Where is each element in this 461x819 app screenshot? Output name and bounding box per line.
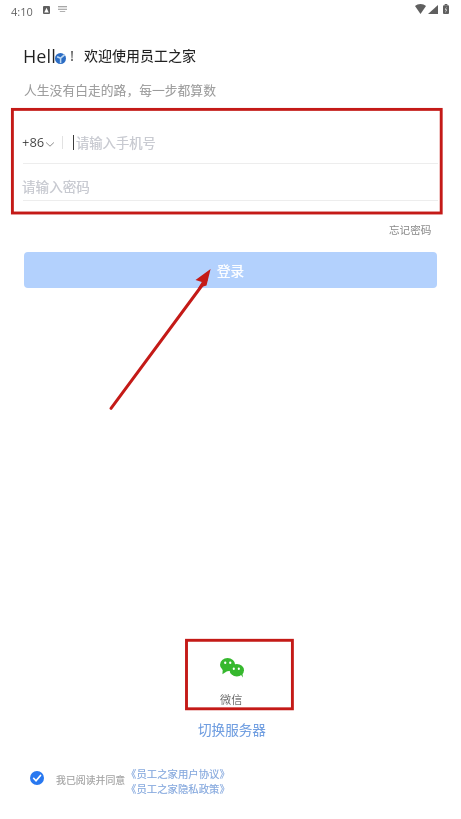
button[interactable]: 登录 (24, 252, 437, 288)
button[interactable]: +86 (22, 133, 54, 151)
staticText: 我已阅读并同意 (56, 773, 126, 787)
staticText: ! (70, 45, 75, 65)
staticText: +86 (22, 133, 45, 151)
staticText: 登录 (217, 260, 244, 280)
staticText: 请输入手机号 (76, 133, 156, 152)
button[interactable]: 《员工之家用户协议》 (126, 766, 230, 781)
button[interactable]: 切换服务器 (198, 719, 266, 739)
staticText: Hell (23, 44, 56, 66)
button[interactable]: 忘记密码 (389, 222, 432, 237)
button[interactable]: 微信 (187, 638, 292, 709)
button[interactable]: Agree to terms checkbox (30, 771, 44, 785)
staticText: 人生没有白走的路，每一步都算数 (24, 80, 216, 99)
staticText: 4:10 (11, 4, 33, 19)
staticText: 欢迎使用员工之家 (84, 45, 196, 65)
staticText: 请输入密码 (22, 176, 90, 196)
staticText: 微信 (220, 691, 243, 707)
button[interactable]: 《员工之家隐私政策》 (126, 781, 230, 796)
